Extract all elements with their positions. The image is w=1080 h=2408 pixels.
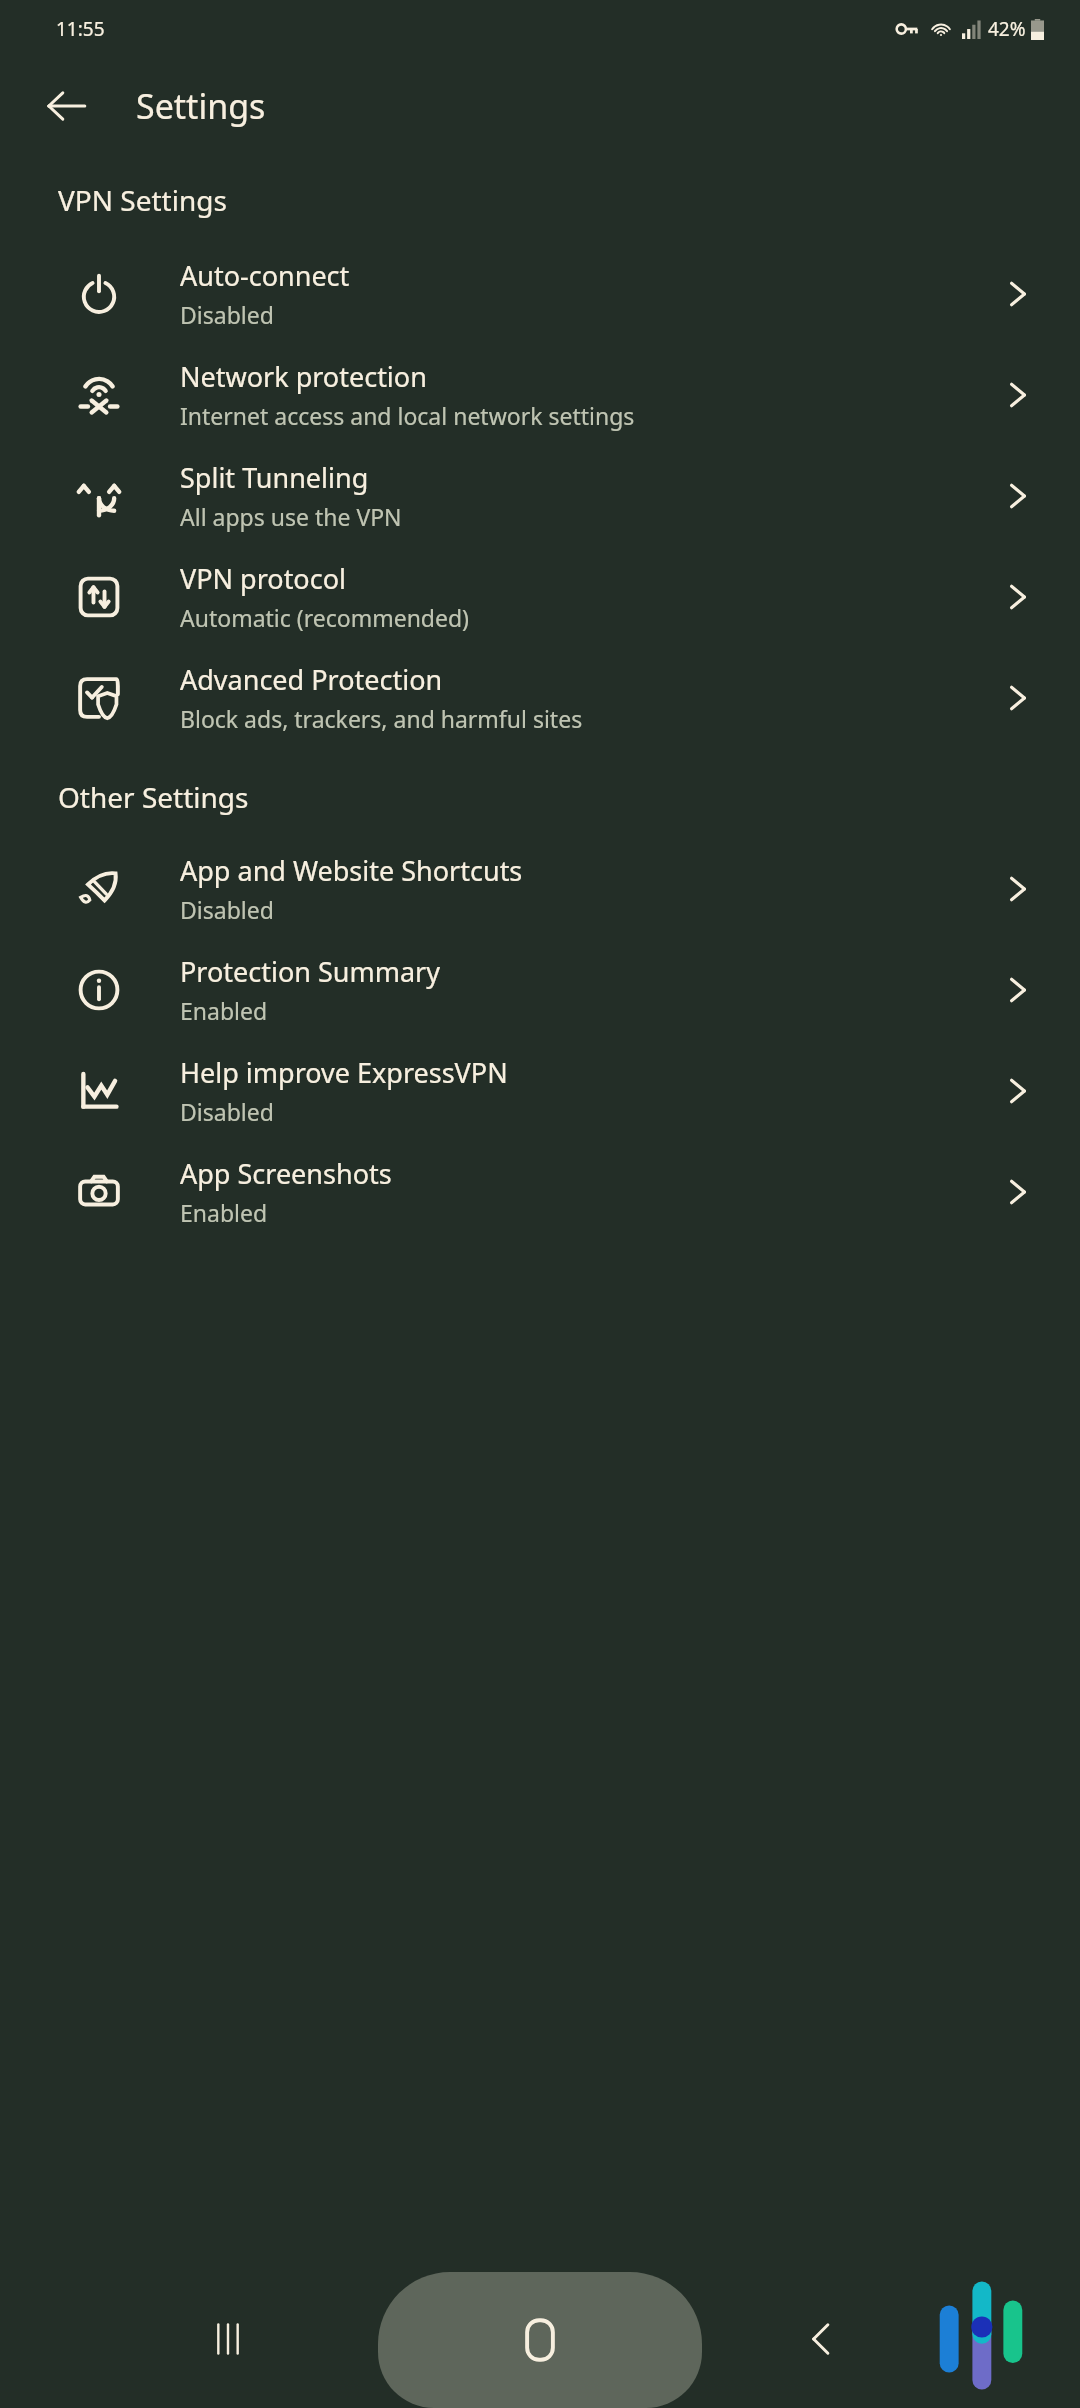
staticText: VPN Settings bbox=[58, 181, 227, 219]
staticText: Other Settings bbox=[58, 778, 249, 816]
staticText: Network protection bbox=[180, 358, 427, 395]
button[interactable]: Back bbox=[784, 2301, 860, 2377]
button[interactable]: Recent apps bbox=[190, 2301, 266, 2377]
button[interactable]: VPN protocol bbox=[0, 546, 1080, 647]
staticText: 42% bbox=[988, 16, 1026, 42]
staticText: Enabled bbox=[180, 995, 268, 1026]
button[interactable]: Split Tunneling bbox=[0, 445, 1080, 546]
staticText: Automatic (recommended) bbox=[180, 602, 470, 633]
staticText: Settings bbox=[136, 83, 266, 129]
staticText: Advanced Protection bbox=[180, 661, 443, 698]
staticText: Auto-connect bbox=[180, 257, 350, 294]
staticText: All apps use the VPN bbox=[180, 501, 402, 532]
button[interactable]: App Screenshots bbox=[0, 1141, 1080, 1242]
button[interactable]: Help improve ExpressVPN bbox=[0, 1040, 1080, 1141]
button[interactable]: App and Website Shortcuts bbox=[0, 838, 1080, 939]
button[interactable]: Network protection bbox=[0, 344, 1080, 445]
staticText: Protection Summary bbox=[180, 953, 441, 990]
staticText: Split Tunneling bbox=[180, 459, 369, 496]
button[interactable]: Auto-connect bbox=[0, 243, 1080, 344]
staticText: Enabled bbox=[180, 1197, 268, 1228]
staticText: App and Website Shortcuts bbox=[180, 852, 523, 889]
staticText: Disabled bbox=[180, 894, 274, 925]
button[interactable]: Advanced Protection bbox=[0, 647, 1080, 748]
staticText: App Screenshots bbox=[180, 1155, 392, 1192]
staticText: Disabled bbox=[180, 299, 274, 330]
staticText: Block ads, trackers, and harmful sites bbox=[180, 703, 583, 734]
staticText: 11:55 bbox=[56, 16, 105, 42]
button[interactable]: Back bbox=[36, 76, 96, 136]
staticText: Internet access and local network settin… bbox=[180, 400, 635, 431]
button[interactable]: Home bbox=[378, 2272, 702, 2408]
staticText: VPN protocol bbox=[180, 560, 346, 597]
button[interactable]: Protection Summary bbox=[0, 939, 1080, 1040]
staticText: Help improve ExpressVPN bbox=[180, 1054, 508, 1091]
staticText: Disabled bbox=[180, 1096, 274, 1127]
